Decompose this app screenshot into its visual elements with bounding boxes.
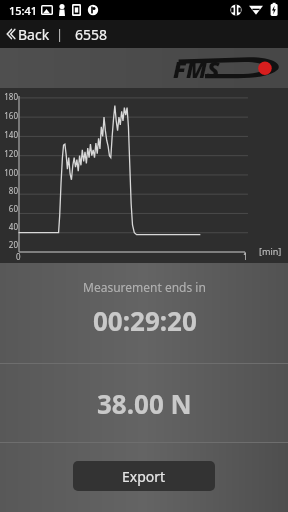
staticText: 1 bbox=[243, 251, 248, 262]
staticText: 120 bbox=[4, 148, 18, 159]
staticText: [min] bbox=[259, 245, 282, 257]
other: FMS logo bbox=[172, 53, 282, 83]
staticText: 15:41 bbox=[9, 3, 38, 18]
staticText: 180 bbox=[4, 91, 18, 102]
staticText: 6558 bbox=[75, 25, 108, 44]
button[interactable]: Back bbox=[0, 20, 56, 48]
staticText: 160 bbox=[4, 110, 18, 121]
button[interactable]: Export bbox=[73, 461, 215, 491]
staticText: 38.00 N bbox=[97, 386, 192, 421]
staticText: 140 bbox=[4, 129, 18, 140]
staticText: 80 bbox=[8, 185, 18, 196]
staticText: Measurement ends in bbox=[83, 279, 206, 295]
staticText: 20 bbox=[8, 239, 18, 250]
staticText: 100 bbox=[4, 167, 18, 178]
staticText: 60 bbox=[8, 203, 18, 214]
staticText: 40 bbox=[8, 221, 18, 232]
staticText: 0 bbox=[16, 251, 21, 262]
staticText: 00:29:20 bbox=[93, 303, 197, 338]
staticText: FMS bbox=[173, 53, 220, 84]
staticText: Back bbox=[18, 25, 50, 44]
staticText: Export bbox=[122, 467, 166, 486]
staticText: | bbox=[56, 25, 64, 43]
